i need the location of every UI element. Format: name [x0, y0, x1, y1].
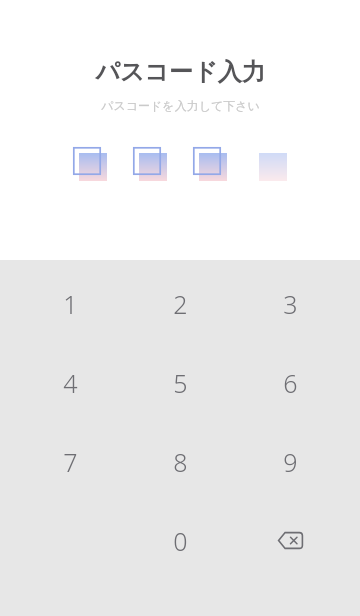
button[interactable]: 1 — [15, 264, 125, 343]
button[interactable]: 8 — [125, 422, 235, 501]
button[interactable]: 4 — [15, 343, 125, 422]
staticText: 0 — [173, 524, 188, 558]
staticText: 5 — [173, 366, 188, 400]
staticText: 4 — [63, 366, 78, 400]
button[interactable]: 7 — [15, 422, 125, 501]
button[interactable]: 0 — [125, 501, 235, 580]
staticText: 8 — [173, 445, 188, 479]
staticText: 2 — [173, 287, 188, 321]
staticText: パスコード入力 — [95, 57, 266, 87]
staticText: 7 — [63, 445, 78, 479]
staticText: 1 — [63, 287, 78, 321]
staticText: 9 — [283, 445, 298, 479]
button[interactable]: 5 — [125, 343, 235, 422]
staticText: 3 — [283, 287, 298, 321]
button[interactable]: 6 — [235, 343, 345, 422]
staticText: 6 — [283, 366, 298, 400]
button[interactable]: Delete — [235, 501, 345, 580]
button[interactable]: 2 — [125, 264, 235, 343]
staticText: パスコードを入力して下さい — [101, 98, 260, 113]
button[interactable]: 9 — [235, 422, 345, 501]
button[interactable]: 3 — [235, 264, 345, 343]
